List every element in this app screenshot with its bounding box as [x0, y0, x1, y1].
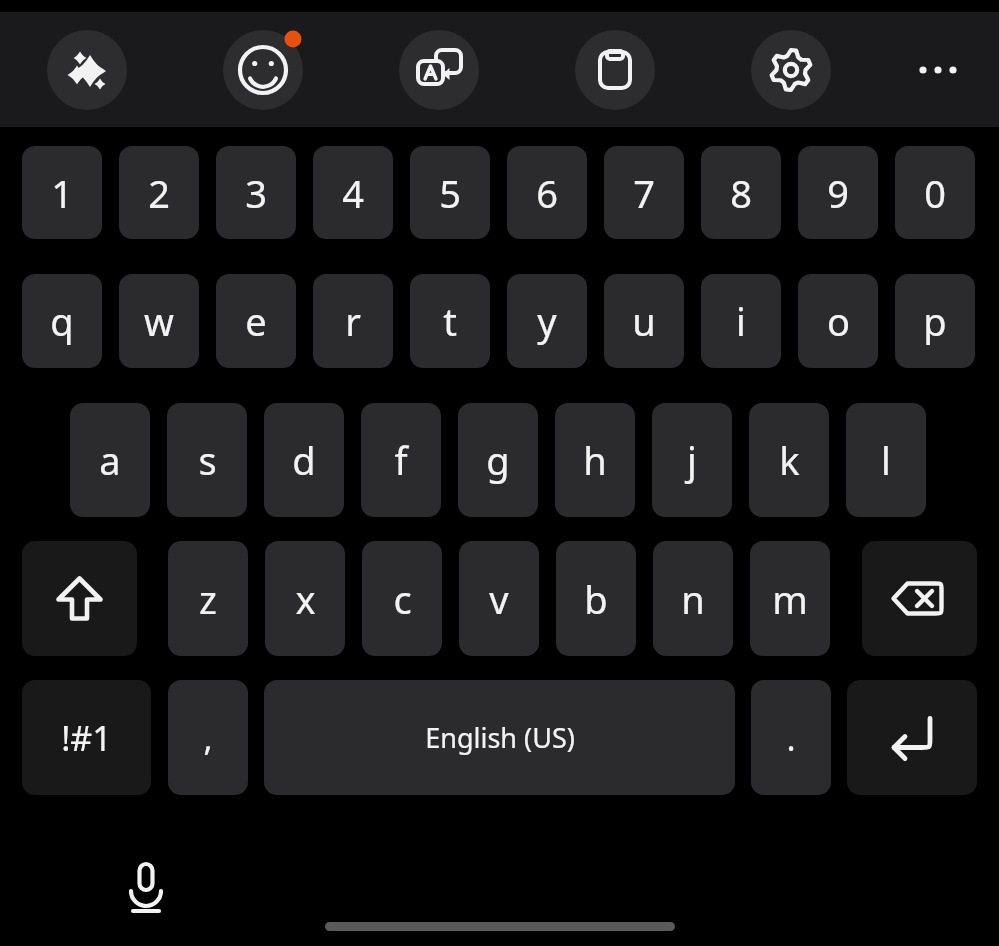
button[interactable]: Backspace: [862, 541, 977, 656]
staticText: !#1: [61, 715, 112, 761]
staticText: m: [772, 573, 808, 625]
button[interactable]: 7: [604, 146, 684, 239]
staticText: j: [687, 434, 697, 486]
staticText: f: [394, 434, 408, 486]
staticText: a: [99, 434, 121, 486]
button[interactable]: Voice input: [106, 845, 186, 925]
staticText: n: [681, 573, 705, 625]
button[interactable]: 9: [798, 146, 878, 239]
button[interactable]: p: [895, 274, 975, 368]
button[interactable]: g: [458, 403, 538, 517]
staticText: s: [198, 434, 217, 486]
staticText: 3: [245, 167, 267, 219]
button[interactable]: e: [216, 274, 296, 368]
button[interactable]: 5: [410, 146, 490, 239]
button[interactable]: d: [264, 403, 344, 517]
button[interactable]: m: [750, 541, 830, 656]
button[interactable]: r: [313, 274, 393, 368]
staticText: q: [50, 295, 74, 347]
button[interactable]: Shift: [22, 541, 137, 656]
staticText: ,: [203, 715, 213, 761]
staticText: h: [583, 434, 607, 486]
staticText: English (US): [425, 719, 575, 756]
button[interactable]: l: [846, 403, 926, 517]
button[interactable]: y: [507, 274, 587, 368]
staticText: o: [827, 295, 850, 347]
button[interactable]: 6: [507, 146, 587, 239]
button[interactable]: Clipboard: [575, 30, 655, 110]
button[interactable]: f: [361, 403, 441, 517]
button[interactable]: v: [459, 541, 539, 656]
button[interactable]: 3: [216, 146, 296, 239]
button[interactable]: 8: [701, 146, 781, 239]
staticText: r: [345, 295, 361, 347]
staticText: g: [486, 434, 510, 486]
staticText: u: [632, 295, 656, 347]
staticText: 0: [924, 167, 946, 219]
staticText: p: [923, 295, 947, 347]
button[interactable]: b: [556, 541, 636, 656]
staticText: k: [779, 434, 800, 486]
button[interactable]: Settings: [751, 30, 831, 110]
staticText: d: [292, 434, 316, 486]
button[interactable]: k: [749, 403, 829, 517]
staticText: 1: [51, 167, 73, 219]
staticText: z: [199, 573, 217, 625]
staticText: y: [537, 295, 557, 347]
button[interactable]: i: [701, 274, 781, 368]
staticText: 4: [342, 167, 364, 219]
button[interactable]: More options: [898, 30, 978, 110]
staticText: 2: [148, 167, 170, 219]
staticText: b: [584, 573, 608, 625]
staticText: t: [443, 295, 457, 347]
staticText: l: [881, 434, 891, 486]
button[interactable]: u: [604, 274, 684, 368]
button[interactable]: w: [119, 274, 199, 368]
staticText: 8: [730, 167, 752, 219]
button[interactable]: !#1: [22, 680, 151, 795]
button[interactable]: s: [167, 403, 247, 517]
button[interactable]: Translate: [399, 30, 479, 110]
staticText: x: [295, 573, 316, 625]
staticText: e: [245, 295, 267, 347]
button[interactable]: .: [751, 680, 831, 795]
staticText: v: [489, 573, 509, 625]
button[interactable]: z: [168, 541, 248, 656]
button[interactable]: 1: [22, 146, 102, 239]
button[interactable]: n: [653, 541, 733, 656]
button[interactable]: 2: [119, 146, 199, 239]
button[interactable]: h: [555, 403, 635, 517]
button[interactable]: j: [652, 403, 732, 517]
staticText: c: [393, 573, 412, 625]
staticText: i: [736, 295, 746, 347]
staticText: .: [786, 715, 796, 761]
button[interactable]: x: [265, 541, 345, 656]
staticText: 9: [827, 167, 849, 219]
button[interactable]: Enter: [847, 680, 977, 795]
button[interactable]: AI suggestions: [47, 30, 127, 110]
button[interactable]: English (US): [264, 680, 735, 795]
staticText: w: [144, 295, 174, 347]
staticText: 6: [536, 167, 558, 219]
staticText: 7: [633, 167, 655, 219]
button[interactable]: a: [70, 403, 150, 517]
button[interactable]: o: [798, 274, 878, 368]
button[interactable]: 4: [313, 146, 393, 239]
button[interactable]: ,: [168, 680, 248, 795]
button[interactable]: Emoji: [223, 30, 303, 110]
button[interactable]: q: [22, 274, 102, 368]
staticText: 5: [439, 167, 461, 219]
button[interactable]: c: [362, 541, 442, 656]
button[interactable]: t: [410, 274, 490, 368]
button[interactable]: 0: [895, 146, 975, 239]
